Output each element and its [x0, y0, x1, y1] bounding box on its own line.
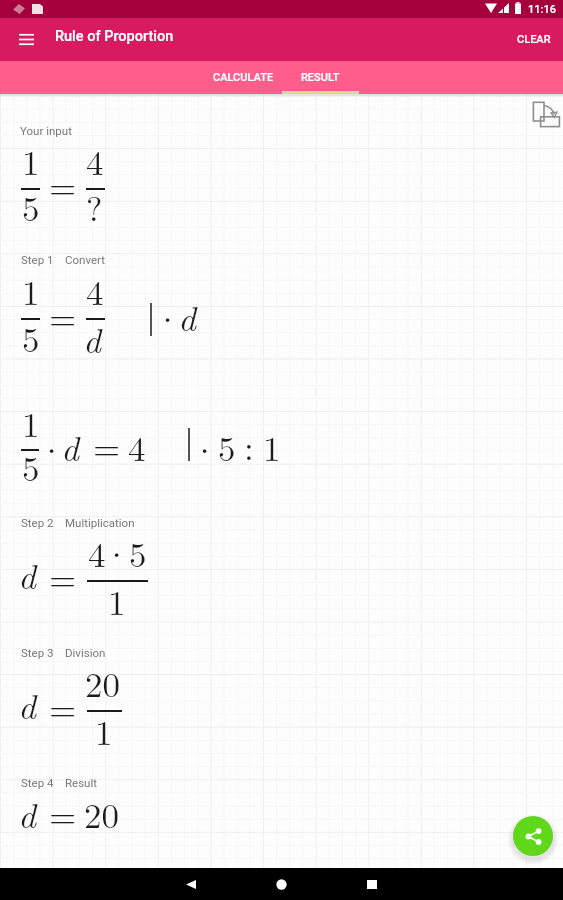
staticText: = [93, 421, 121, 471]
staticText: 1 [22, 398, 40, 448]
staticText: = [49, 682, 77, 732]
staticText: : [244, 421, 254, 471]
staticText: = [49, 789, 77, 839]
staticText: · [38, 424, 66, 474]
staticText: 1 [22, 136, 40, 186]
staticText: d [61, 422, 79, 472]
button[interactable]: Back [170, 868, 212, 900]
staticText: d [83, 314, 101, 364]
staticText: ? [86, 182, 103, 232]
button[interactable]: Home [260, 868, 302, 900]
staticText: 5 [22, 313, 40, 363]
staticText: Multiplication [65, 516, 135, 529]
staticText: Step 3 [21, 646, 54, 659]
button[interactable]: CALCULATE [205, 61, 282, 94]
button[interactable]: Share [513, 816, 553, 856]
staticText: d [18, 550, 36, 600]
staticText: · [103, 528, 131, 578]
staticText: = [49, 160, 77, 210]
staticText: 1 [95, 706, 113, 756]
staticText: 1 [22, 266, 40, 316]
staticText: 4 [128, 422, 146, 472]
staticText: CALCULATE [213, 71, 274, 84]
staticText: 4 [86, 136, 104, 186]
staticText: 20 [85, 658, 121, 708]
staticText: Convert [65, 253, 105, 266]
staticText: RESULT [301, 71, 340, 84]
staticText: 5 [129, 528, 147, 578]
staticText: 4 [88, 528, 106, 578]
staticText: 11:16 [528, 3, 556, 16]
staticText: 1 [263, 422, 281, 472]
button[interactable]: Recent apps [351, 868, 393, 900]
staticText: d [18, 680, 36, 730]
staticText: CLEAR [517, 33, 551, 46]
staticText: = [49, 291, 77, 341]
staticText: d [18, 789, 36, 839]
staticText: · [154, 293, 182, 343]
staticText: Rule of Proportion [55, 28, 174, 45]
staticText: Your input [20, 124, 72, 137]
staticText: Step 4 [21, 776, 54, 789]
staticText: Division [65, 646, 106, 659]
staticText: 20 [84, 789, 120, 839]
button[interactable]: RESULT [282, 61, 359, 94]
staticText: d [178, 292, 196, 342]
button[interactable]: CLEAR [501, 18, 563, 61]
staticText: 5 [22, 442, 40, 492]
staticText: · [191, 424, 219, 474]
staticText: 1 [108, 576, 126, 626]
button[interactable]: Open navigation menu [7, 18, 45, 61]
staticText: 5 [22, 182, 40, 232]
staticText: Result [65, 776, 98, 789]
button[interactable]: Rotate screen [528, 98, 563, 132]
staticText: 4 [86, 266, 104, 316]
staticText: Step 1 [21, 253, 54, 266]
staticText: Step 2 [21, 516, 54, 529]
staticText: 5 [218, 422, 236, 472]
staticText: = [49, 552, 77, 602]
